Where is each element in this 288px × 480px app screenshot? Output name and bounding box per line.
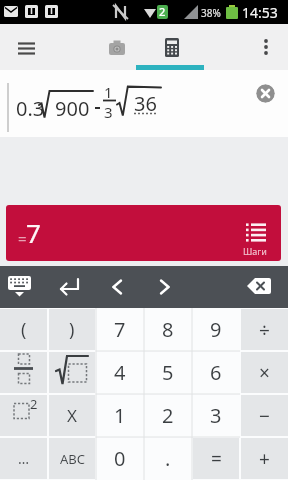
staticText: 6 [210, 359, 222, 386]
button[interactable]: 2 [0, 394, 48, 437]
button[interactable]: 4 [96, 351, 144, 394]
staticText: ABC [60, 450, 85, 468]
button[interactable] [256, 84, 275, 103]
staticText: ) [69, 317, 75, 342]
staticText: . [165, 445, 171, 472]
staticText: 14:53 [242, 3, 278, 22]
staticText: = [211, 446, 222, 472]
staticText: × [259, 360, 270, 386]
button[interactable]: 5 [144, 351, 192, 394]
staticText: 0 [114, 445, 126, 472]
staticText: 3 [104, 102, 113, 122]
button[interactable]: 7 [96, 308, 144, 351]
button[interactable]: . [144, 437, 192, 480]
staticText: = [18, 228, 27, 248]
button[interactable]: 9 [192, 308, 240, 351]
button[interactable]: … [0, 437, 48, 480]
button[interactable] [10, 36, 40, 60]
button[interactable] [52, 272, 88, 302]
staticText: ÷ [259, 317, 270, 343]
staticText: … [18, 449, 30, 468]
button[interactable] [48, 351, 96, 394]
button[interactable]: 0 [96, 437, 144, 480]
staticText: 7 [26, 215, 41, 250]
staticText: 2 [30, 395, 38, 413]
staticText: + [259, 446, 270, 472]
button[interactable] [240, 272, 280, 302]
button[interactable]: × [240, 351, 288, 394]
staticText: 2 [162, 402, 174, 429]
button[interactable] [154, 32, 190, 62]
button[interactable]: 8 [144, 308, 192, 351]
staticText: 2 [159, 4, 166, 19]
staticText: 3 [210, 402, 222, 429]
staticText: 9 [210, 316, 222, 343]
button[interactable]: ÷ [240, 308, 288, 351]
button[interactable]: = [6, 205, 281, 261]
button[interactable]: 6 [192, 351, 240, 394]
button[interactable]: X [48, 394, 96, 437]
button[interactable] [2, 270, 40, 304]
staticText: 5 [162, 359, 174, 386]
staticText: Шаги [243, 245, 267, 257]
staticText: 1 [114, 402, 126, 429]
button[interactable] [254, 32, 280, 62]
button[interactable]: 1 [96, 394, 144, 437]
staticText: 4 [114, 359, 126, 386]
button[interactable]: 3 [192, 394, 240, 437]
button[interactable]: ABC [48, 437, 96, 480]
staticText: 1 [104, 82, 113, 102]
button[interactable]: 2 [144, 394, 192, 437]
button[interactable]: ( [0, 308, 48, 351]
button[interactable] [100, 272, 132, 302]
button[interactable] [0, 351, 48, 394]
staticText: 7 [114, 316, 126, 343]
staticText: 8 [162, 316, 174, 343]
button[interactable]: + [240, 437, 288, 480]
button[interactable]: = [192, 437, 240, 480]
staticText: 38% [201, 6, 221, 20]
staticText: 0.3 [16, 95, 45, 122]
staticText: − [259, 403, 270, 429]
button[interactable] [149, 272, 181, 302]
staticText: X [67, 404, 77, 427]
button[interactable] [99, 32, 135, 62]
button[interactable]: ) [48, 308, 96, 351]
button[interactable]: − [240, 394, 288, 437]
staticText: 900 [55, 95, 90, 122]
staticText: 36 [134, 90, 157, 117]
staticText: ( [21, 317, 27, 342]
